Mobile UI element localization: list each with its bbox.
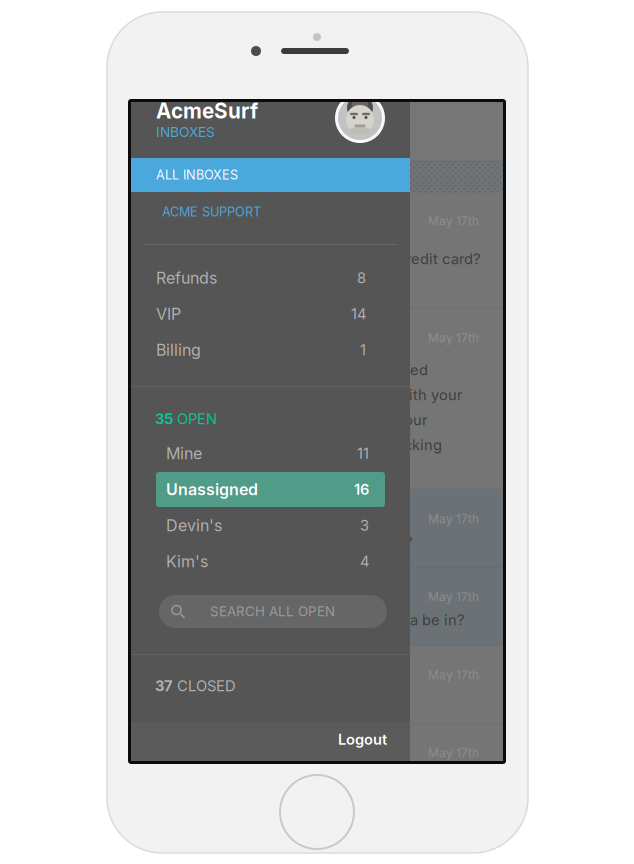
button[interactable]: Devin's [131,508,410,543]
button[interactable]: Mine [131,436,410,471]
staticText: 3 [360,517,369,534]
staticText: 37 [155,677,173,695]
staticText: May 17th [428,331,479,345]
staticText: ALL INBOXES [156,167,238,183]
staticText: May 17th [428,590,479,604]
staticText: Devin's [166,516,222,535]
staticText: a package here today that was sent with … [145,386,463,404]
staticText: 35 [155,410,173,428]
staticText: May 17th [428,512,479,526]
staticText: Hi there! Is it possible to update my cr… [145,250,480,268]
staticText: May 17th [428,668,479,682]
button[interactable]: VIP [131,301,410,327]
staticText: 4 [360,553,369,570]
staticText: SEARCH ALL OPEN [210,603,335,619]
button[interactable]: ALL INBOXES [131,158,410,192]
staticText: 1 [360,341,366,359]
staticText: May 17th [428,746,479,760]
staticText: 14 [351,305,366,323]
staticText: Billing [156,340,201,360]
button[interactable]: SEARCH ALL OPEN [159,595,387,628]
staticText: 16 [354,481,369,498]
staticText: order number so I could use it for track… [145,436,442,454]
staticText: ACME SUPPORT [162,204,261,220]
staticText: 11 [357,445,369,462]
button[interactable]: Logout [329,725,396,758]
staticText: May 17th [428,214,479,228]
staticText: Logout [338,731,387,748]
button[interactable]: Kim's [131,544,410,579]
staticText: Kim's [166,552,208,571]
staticText: VIP [156,304,181,324]
staticText: 8 [357,269,366,287]
button[interactable]: Billing [131,337,410,363]
staticText: CLOSED [177,677,236,695]
button[interactable]: Refunds [131,265,410,291]
staticText: Hey, what time do you think you gonna be… [145,611,464,629]
staticText: Unassigned [166,480,258,499]
button[interactable]: Unassigned [131,472,410,507]
button[interactable]: 37 [131,653,410,719]
staticText: OPEN [177,410,217,428]
staticText: Refunds [156,268,217,288]
button[interactable]: ACME SUPPORT [131,197,410,227]
staticText: order, and I was finally able to copy yo… [145,411,428,429]
staticText: Hi! Thanks for the note — I just receive… [145,361,428,379]
staticText: AcmeSurf [156,98,258,123]
staticText: Mine [166,444,202,463]
staticText: INBOXES [156,124,215,140]
